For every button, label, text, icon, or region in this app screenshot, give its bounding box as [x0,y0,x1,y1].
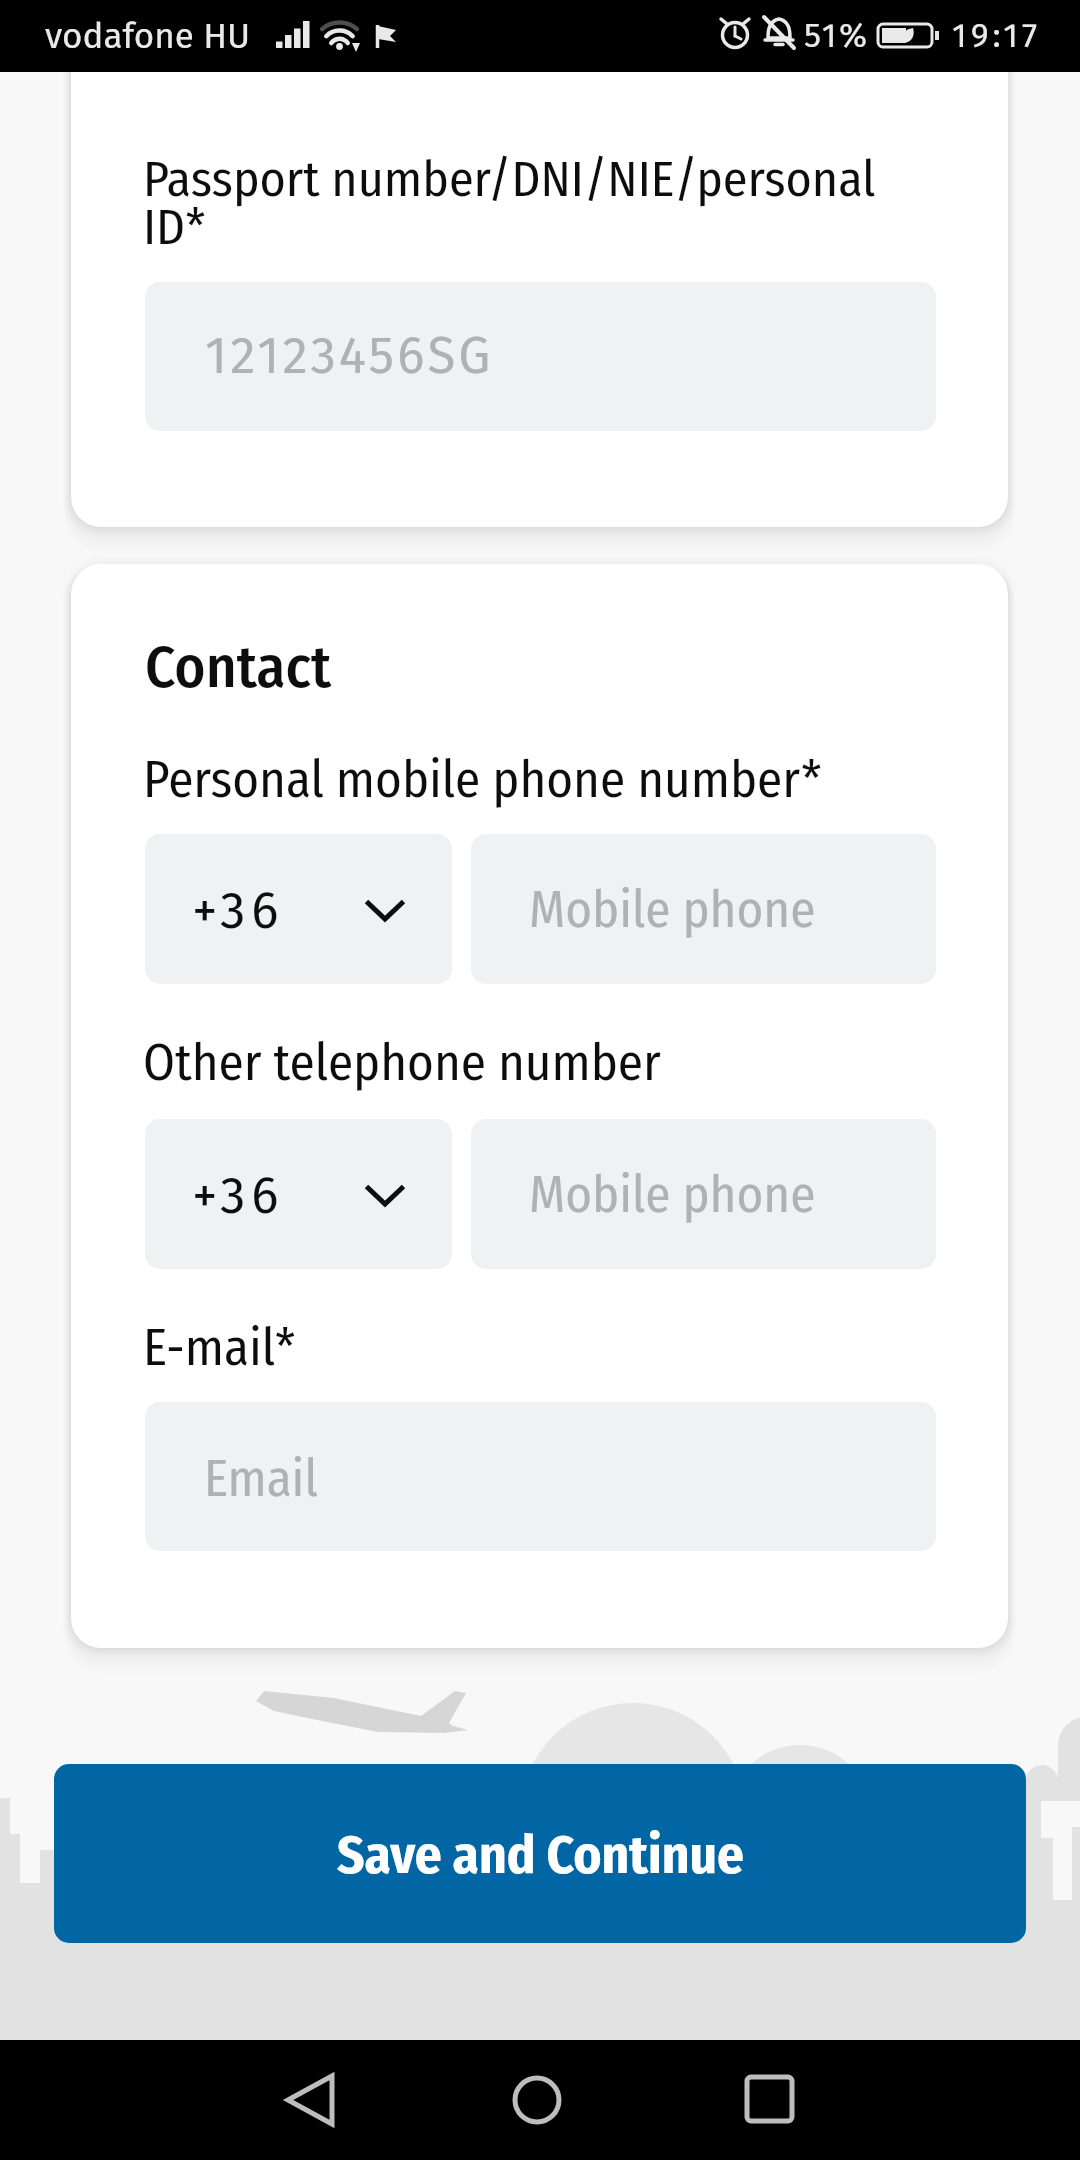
staticText: ID* [143,197,206,257]
staticText: 19:17 [952,15,1042,56]
staticText: +36 [192,880,285,941]
staticText: vodafone HU [45,15,251,57]
button[interactable]: Back [266,2056,354,2144]
button[interactable]: Mobile phone number [471,834,936,984]
staticText: Other telephone number [143,1032,661,1093]
button[interactable]: Country code +36 [145,1119,452,1269]
button[interactable]: Select country code [365,900,405,924]
button[interactable]: Select country code [365,1185,405,1209]
staticText: 51% [804,15,870,56]
staticText: +36 [192,1165,285,1226]
button[interactable]: Save and Continue [54,1764,1026,1943]
staticText: Save and Continue [337,1823,744,1887]
staticText: E-mail* [143,1317,296,1378]
staticText: Contact [145,632,332,703]
staticText: 12123456SG [205,325,494,386]
staticText: Personal mobile phone number* [143,749,822,810]
button[interactable]: Home [493,2056,581,2144]
button[interactable]: Mobile phone number [471,1119,936,1269]
staticText: Mobile phone [529,879,816,940]
button[interactable]: Passport number/DNI/NIE/personal ID [145,282,936,431]
button[interactable]: E-mail [145,1402,936,1551]
staticText: Email [204,1448,318,1509]
staticText: Passport number/DNI/NIE/personal [143,149,876,209]
button[interactable]: Country code +36 [145,834,452,984]
button[interactable]: Recent apps [725,2056,813,2144]
staticText: Mobile phone [529,1164,816,1225]
